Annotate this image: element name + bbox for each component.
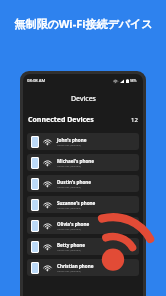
button[interactable]: Suzanne's phone [27,196,139,213]
staticText: Betty phone [57,242,86,248]
other: Wi-Fi [66,212,166,274]
button[interactable]: Dustin's phone [27,175,139,192]
button[interactable]: John's phone [27,133,139,150]
button[interactable]: Michael's phone [27,154,139,171]
button[interactable]: Olivia's phone [27,217,139,234]
staticText: Home WiFi (450Mb/s) [57,185,81,188]
staticText: Suzanne's phone [57,200,96,206]
staticText: Home WiFi (450Mb/s) [57,164,81,167]
staticText: Christian phone [57,263,94,269]
staticText: Devices [71,94,96,104]
staticText: Dustin's phone [57,179,92,185]
staticText: 98% [130,79,137,83]
staticText: Connected Devices [28,115,94,125]
staticText: Michael's phone [57,158,94,164]
staticText: John's phone [57,137,87,143]
staticText: Home WiFi (450Mb/s) [57,248,81,251]
staticText: Home WiFi (450Mb/s) [57,143,81,146]
staticText: 無制限のWi-Fi接続デバイス [14,16,153,31]
staticText: Olivia's phone [57,221,90,227]
staticText: Home WiFi (450Mb/s) [57,269,81,272]
button[interactable]: Christian phone [27,259,139,276]
staticText: Home WiFi (450Mb/s) [57,206,81,209]
staticText: 08:08 AM [27,78,46,84]
button[interactable]: Betty phone [27,238,139,255]
staticText: Home WiFi (450Mb/s) [57,227,81,230]
staticText: 12 [131,116,138,124]
